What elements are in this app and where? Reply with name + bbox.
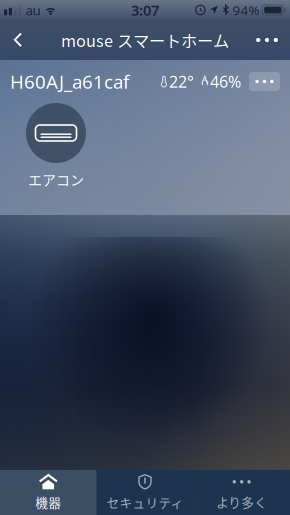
staticText: H60AJ_a61caf xyxy=(10,69,129,94)
staticText: 46% xyxy=(210,71,241,92)
staticText: セキュリティ xyxy=(106,493,183,511)
staticText: 機器 xyxy=(35,493,61,511)
staticText: エアコン xyxy=(28,169,84,189)
button[interactable]: More options xyxy=(244,20,290,60)
staticText: より多く xyxy=(216,493,267,511)
button[interactable]: Home options xyxy=(249,72,280,91)
button[interactable]: エアコン xyxy=(12,103,100,189)
staticText: au xyxy=(26,1,41,19)
button[interactable]: Back xyxy=(0,20,36,60)
button[interactable]: セキュリティ xyxy=(97,470,193,515)
button[interactable]: より多く xyxy=(193,470,290,515)
staticText: 94% xyxy=(232,1,259,19)
button[interactable]: 機器 xyxy=(0,470,97,515)
staticText: 3:07 xyxy=(131,0,159,20)
staticText: mouse スマートホーム xyxy=(61,28,229,52)
staticText: 22° xyxy=(169,71,194,92)
